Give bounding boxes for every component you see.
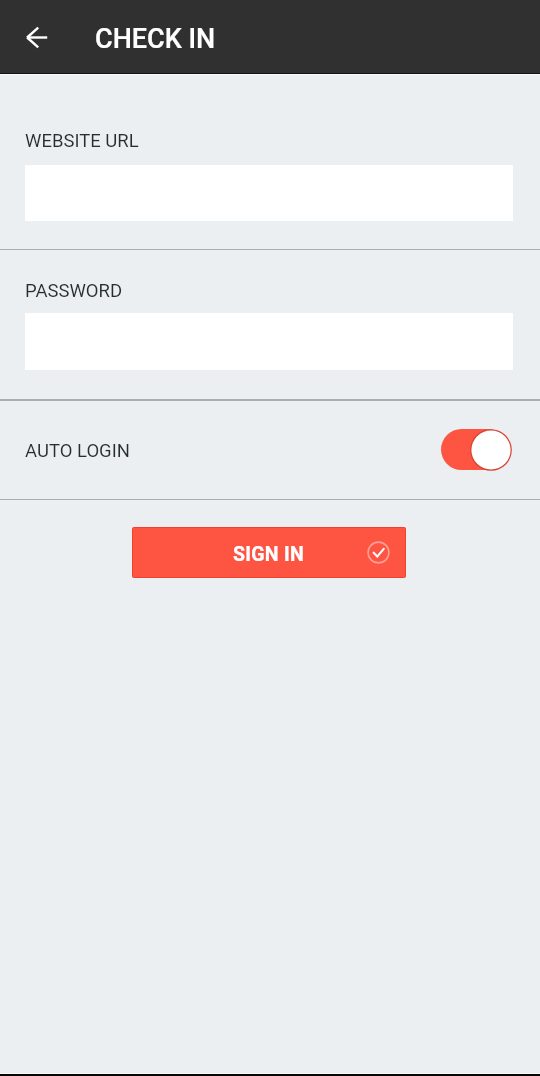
staticText: CHECK IN [95, 23, 216, 55]
button[interactable]: Navigate up [9, 9, 65, 65]
button[interactable]: Auto login switch [436, 421, 516, 479]
staticText: WEBSITE URL [25, 130, 139, 152]
staticText: PASSWORD [25, 280, 123, 302]
button[interactable]: SIGN IN [133, 528, 405, 577]
staticText: SIGN IN [233, 543, 305, 566]
button[interactable]: AUTO LOGIN [0, 401, 540, 499]
staticText: AUTO LOGIN [25, 440, 130, 462]
